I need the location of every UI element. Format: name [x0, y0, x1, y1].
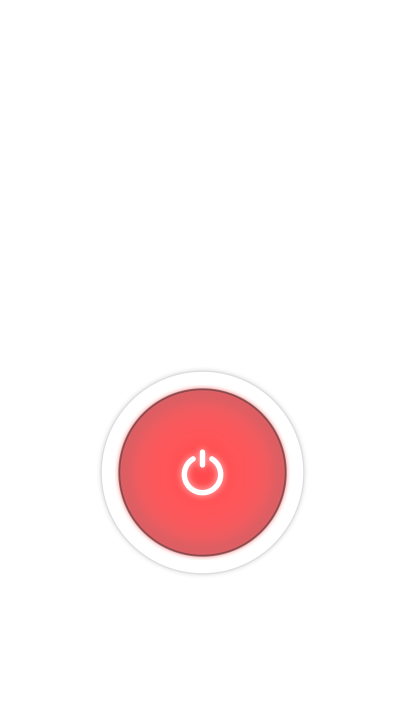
button[interactable]: Power — [93, 363, 312, 582]
